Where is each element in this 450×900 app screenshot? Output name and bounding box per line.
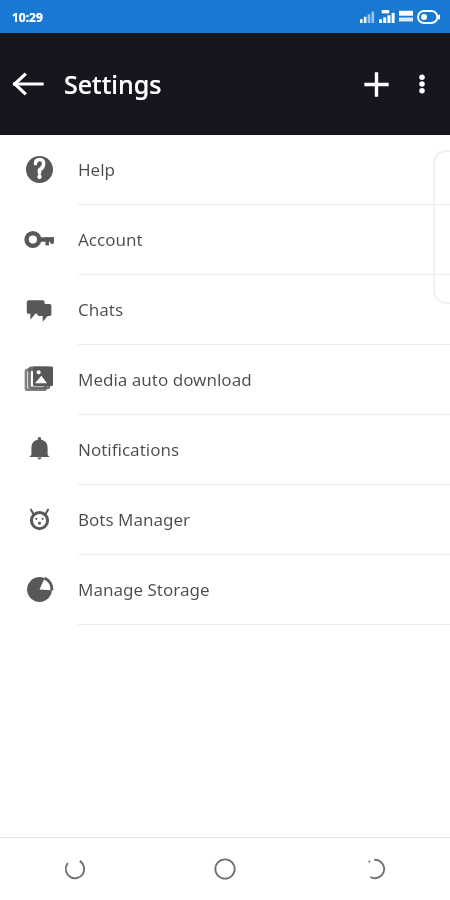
- button[interactable]: Back: [300, 838, 450, 900]
- button[interactable]: Back: [4, 60, 52, 108]
- button[interactable]: Bots Manager: [0, 485, 450, 554]
- staticText: Manage Storage: [78, 578, 210, 601]
- staticText: Notifications: [78, 438, 180, 461]
- staticText: Bots Manager: [78, 508, 191, 531]
- button[interactable]: Add: [352, 60, 400, 108]
- staticText: Chats: [78, 298, 124, 321]
- staticText: Help: [78, 158, 116, 181]
- button[interactable]: Home: [150, 838, 300, 900]
- staticText: 10:29: [12, 9, 43, 25]
- staticText: Media auto download: [78, 368, 252, 391]
- staticText: Settings: [64, 67, 162, 101]
- staticText: Account: [78, 228, 143, 251]
- button[interactable]: Account: [0, 205, 450, 274]
- button[interactable]: Manage Storage: [0, 555, 450, 624]
- button[interactable]: Recents: [0, 838, 150, 900]
- button[interactable]: Chats: [0, 275, 450, 344]
- button[interactable]: Help: [0, 135, 450, 204]
- button[interactable]: More options: [400, 62, 444, 106]
- button[interactable]: Media auto download: [0, 345, 450, 414]
- button[interactable]: Notifications: [0, 415, 450, 484]
